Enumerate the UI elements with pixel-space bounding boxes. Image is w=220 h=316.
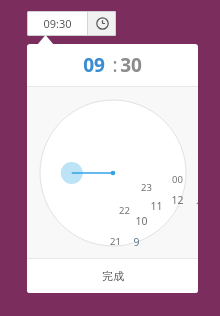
button[interactable]: 22 — [114, 204, 134, 217]
staticText: 09:30 — [43, 16, 72, 31]
button[interactable]: 10 — [131, 214, 151, 227]
staticText: 20 — [119, 265, 130, 278]
staticText: 09 — [83, 52, 105, 78]
staticText: 12 — [171, 193, 184, 206]
staticText: 完成 — [102, 269, 124, 283]
staticText: 9 — [133, 235, 140, 248]
button[interactable]: 8 — [131, 255, 151, 268]
button[interactable]: 9 — [126, 235, 146, 248]
button[interactable]: 20 — [114, 265, 134, 278]
button[interactable]: 09:30 — [27, 11, 87, 36]
button[interactable]: 完成 — [27, 259, 198, 293]
staticText: 8 — [138, 255, 145, 268]
staticText: 30 — [120, 52, 142, 78]
button[interactable]: 1 — [188, 199, 198, 212]
button[interactable]: 23 — [136, 181, 156, 194]
staticText: 00 — [172, 173, 183, 186]
button[interactable]: 00 — [167, 173, 187, 186]
staticText: 23 — [141, 181, 152, 194]
button[interactable]: Open time picker — [88, 11, 116, 36]
staticText: 10 — [135, 214, 148, 227]
staticText: 1 — [195, 199, 198, 212]
staticText: 22 — [119, 204, 130, 217]
button[interactable]: 12 — [167, 193, 187, 206]
button[interactable]: 09 — [83, 52, 105, 78]
staticText: : — [105, 52, 120, 78]
staticText: 11 — [150, 199, 163, 212]
button[interactable]: 30 — [120, 52, 142, 78]
button[interactable]: 21 — [105, 235, 125, 248]
staticText: 21 — [110, 235, 121, 248]
button[interactable]: 11 — [146, 199, 166, 212]
